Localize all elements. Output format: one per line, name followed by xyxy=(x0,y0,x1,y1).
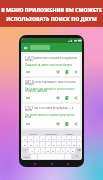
staticText: ⇧ xyxy=(24,149,27,152)
staticText: В МЕНЮ ПРИЛОЖЕНИЯ ВЫ СМОЖЕТЕ xyxy=(1,6,102,13)
button[interactable]: ы xyxy=(28,142,33,147)
button[interactable]: ⇧ xyxy=(22,148,28,153)
button[interactable]: ?123 xyxy=(22,154,30,159)
button[interactable]: ручка xyxy=(25,131,42,135)
button[interactable]: с xyxy=(41,148,45,153)
staticText: Пожалуйста, дайте нам почек баланс xyxy=(25,63,78,67)
button[interactable]: з xyxy=(72,136,76,141)
button[interactable]: э xyxy=(77,142,81,147)
button[interactable]: 1.46 Произнесите который в следующем мес… xyxy=(23,54,80,76)
button[interactable]: ч xyxy=(35,148,40,153)
button[interactable]: ь xyxy=(61,148,65,153)
button[interactable]: ц xyxy=(28,136,33,141)
button[interactable]: 1/72 У нас есть такие бутерброды — я мен… xyxy=(23,104,80,128)
button[interactable]: Play audio xyxy=(25,69,30,74)
staticText: и xyxy=(52,149,54,152)
button[interactable]: о xyxy=(57,142,61,147)
staticText: с xyxy=(42,149,44,152)
staticText: к xyxy=(42,137,44,140)
button[interactable]: Favorite xyxy=(55,95,60,100)
staticText: п xyxy=(48,143,50,146)
staticText: л xyxy=(63,143,65,146)
staticText: е xyxy=(48,137,50,140)
staticText: ?123 xyxy=(23,155,29,158)
button[interactable]: Share xyxy=(73,69,78,74)
staticText: у xyxy=(36,137,38,140)
staticText: пирожное xyxy=(45,132,57,135)
button[interactable]: ш xyxy=(62,136,66,141)
staticText: з xyxy=(73,137,75,140)
button[interactable]: Лицей xyxy=(60,131,78,135)
button[interactable]: у xyxy=(34,136,39,141)
staticText: щ xyxy=(68,137,71,140)
button[interactable]: Share xyxy=(73,121,78,126)
staticText: э xyxy=(78,143,80,146)
button[interactable]: Copy xyxy=(64,121,69,126)
button[interactable]: х xyxy=(77,136,81,141)
button[interactable]: Share xyxy=(73,95,78,100)
staticText: ⌫ xyxy=(77,149,81,152)
button[interactable]: , xyxy=(31,154,37,159)
button[interactable]: к xyxy=(40,136,45,141)
staticText: р xyxy=(53,143,55,146)
button[interactable]: ж xyxy=(72,142,76,147)
button[interactable]: д xyxy=(67,142,71,147)
button[interactable]: е xyxy=(46,136,51,141)
staticText: о xyxy=(58,143,60,146)
staticText: г xyxy=(58,137,60,140)
button[interactable]: Back xyxy=(23,45,29,51)
button[interactable]: б xyxy=(66,148,70,153)
button[interactable]: я xyxy=(29,148,34,153)
staticText: ID47 В гости переводить, вам его очень о… xyxy=(25,80,78,86)
button[interactable]: в xyxy=(34,142,39,147)
staticText: ж xyxy=(73,143,75,146)
staticText: м xyxy=(47,149,49,152)
button[interactable]: п xyxy=(46,142,51,147)
staticText: ш xyxy=(63,137,66,140)
button[interactable]: ⌫ xyxy=(76,148,81,153)
button[interactable]: м xyxy=(46,148,50,153)
staticText: ц xyxy=(30,137,32,140)
button[interactable]: н xyxy=(52,136,56,141)
staticText: ИСПОЛЬЗОВАТЬ ПОИСК ПО ДВУМ ЯЗЫКАМ! xyxy=(0,15,103,22)
button[interactable]: Search field xyxy=(30,45,50,50)
button[interactable]: т xyxy=(56,148,60,153)
button[interactable]: Favorite xyxy=(55,121,60,126)
button[interactable]: пирожное xyxy=(42,131,60,135)
button[interactable]: ф xyxy=(22,142,27,147)
button[interactable]: ю xyxy=(71,148,75,153)
button[interactable]: и xyxy=(51,148,55,153)
staticText: ь xyxy=(62,149,64,152)
staticText: й xyxy=(24,137,26,140)
button[interactable]: Play audio xyxy=(25,95,30,100)
button[interactable]: л xyxy=(62,142,66,147)
button[interactable]: ⏎ xyxy=(72,154,81,159)
staticText: ы xyxy=(30,143,32,146)
staticText: ручка xyxy=(30,132,37,135)
button[interactable]: Play audio xyxy=(25,121,30,126)
staticText: ч xyxy=(37,149,39,152)
button[interactable]: ID47 В гости переводить, вам его очень о… xyxy=(23,78,80,102)
staticText: Лицей xyxy=(65,132,73,135)
button[interactable]: й xyxy=(22,136,27,141)
staticText: д xyxy=(68,143,70,146)
button[interactable]: Favorite xyxy=(55,69,60,74)
button[interactable]: Copy xyxy=(64,95,69,100)
staticText: ф xyxy=(24,143,26,146)
button[interactable]: щ xyxy=(67,136,71,141)
staticText: ⏎ xyxy=(75,155,78,158)
staticText: 1.46 Произнесите который в следующем мес… xyxy=(25,56,78,62)
staticText: 1/72 У нас есть такие бутерброды — я мен… xyxy=(25,106,78,112)
button[interactable]: а xyxy=(40,142,45,147)
button[interactable]: р xyxy=(52,142,56,147)
staticText: Это меню занято и подпись для только это… xyxy=(25,113,78,119)
button[interactable]: Copy xyxy=(64,69,69,74)
button[interactable]: г xyxy=(57,136,61,141)
staticText: я xyxy=(31,149,33,152)
staticText: в xyxy=(36,143,38,146)
